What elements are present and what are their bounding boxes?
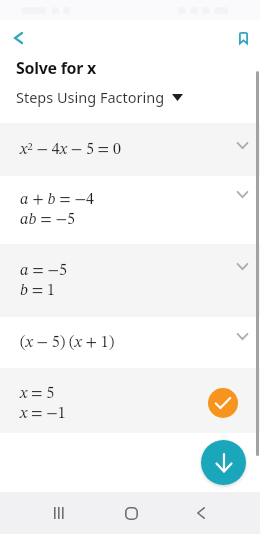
staticText: x = −1 — [20, 406, 66, 422]
staticText: a = −5 — [20, 263, 68, 279]
button[interactable] — [208, 388, 238, 418]
staticText: ab = −5 — [20, 212, 75, 228]
button[interactable]: (x − 5) (x + 1) — [0, 317, 260, 368]
staticText: Solve for x — [16, 57, 96, 79]
staticText: x = 5 — [20, 386, 55, 402]
button[interactable] — [9, 29, 27, 47]
staticText: a + b = −4 — [20, 192, 94, 208]
button[interactable]: Steps Using Factoring — [16, 87, 183, 107]
button[interactable]: a = −5 — [0, 244, 260, 317]
button[interactable] — [119, 501, 143, 525]
button[interactable]: x2 − 4x − 5 = 0 — [0, 123, 260, 176]
button[interactable]: a + b = −4 — [0, 176, 260, 244]
staticText: b = 1 — [20, 283, 55, 299]
staticText: x2 − 4x − 5 = 0 — [20, 142, 121, 158]
staticText: Steps Using Factoring — [16, 87, 165, 107]
button[interactable]: x = 5 — [0, 368, 260, 433]
button[interactable] — [189, 501, 213, 525]
button[interactable] — [234, 29, 252, 47]
staticText: (x − 5) (x + 1) — [20, 335, 115, 351]
button[interactable] — [201, 440, 246, 485]
button[interactable] — [47, 501, 71, 525]
